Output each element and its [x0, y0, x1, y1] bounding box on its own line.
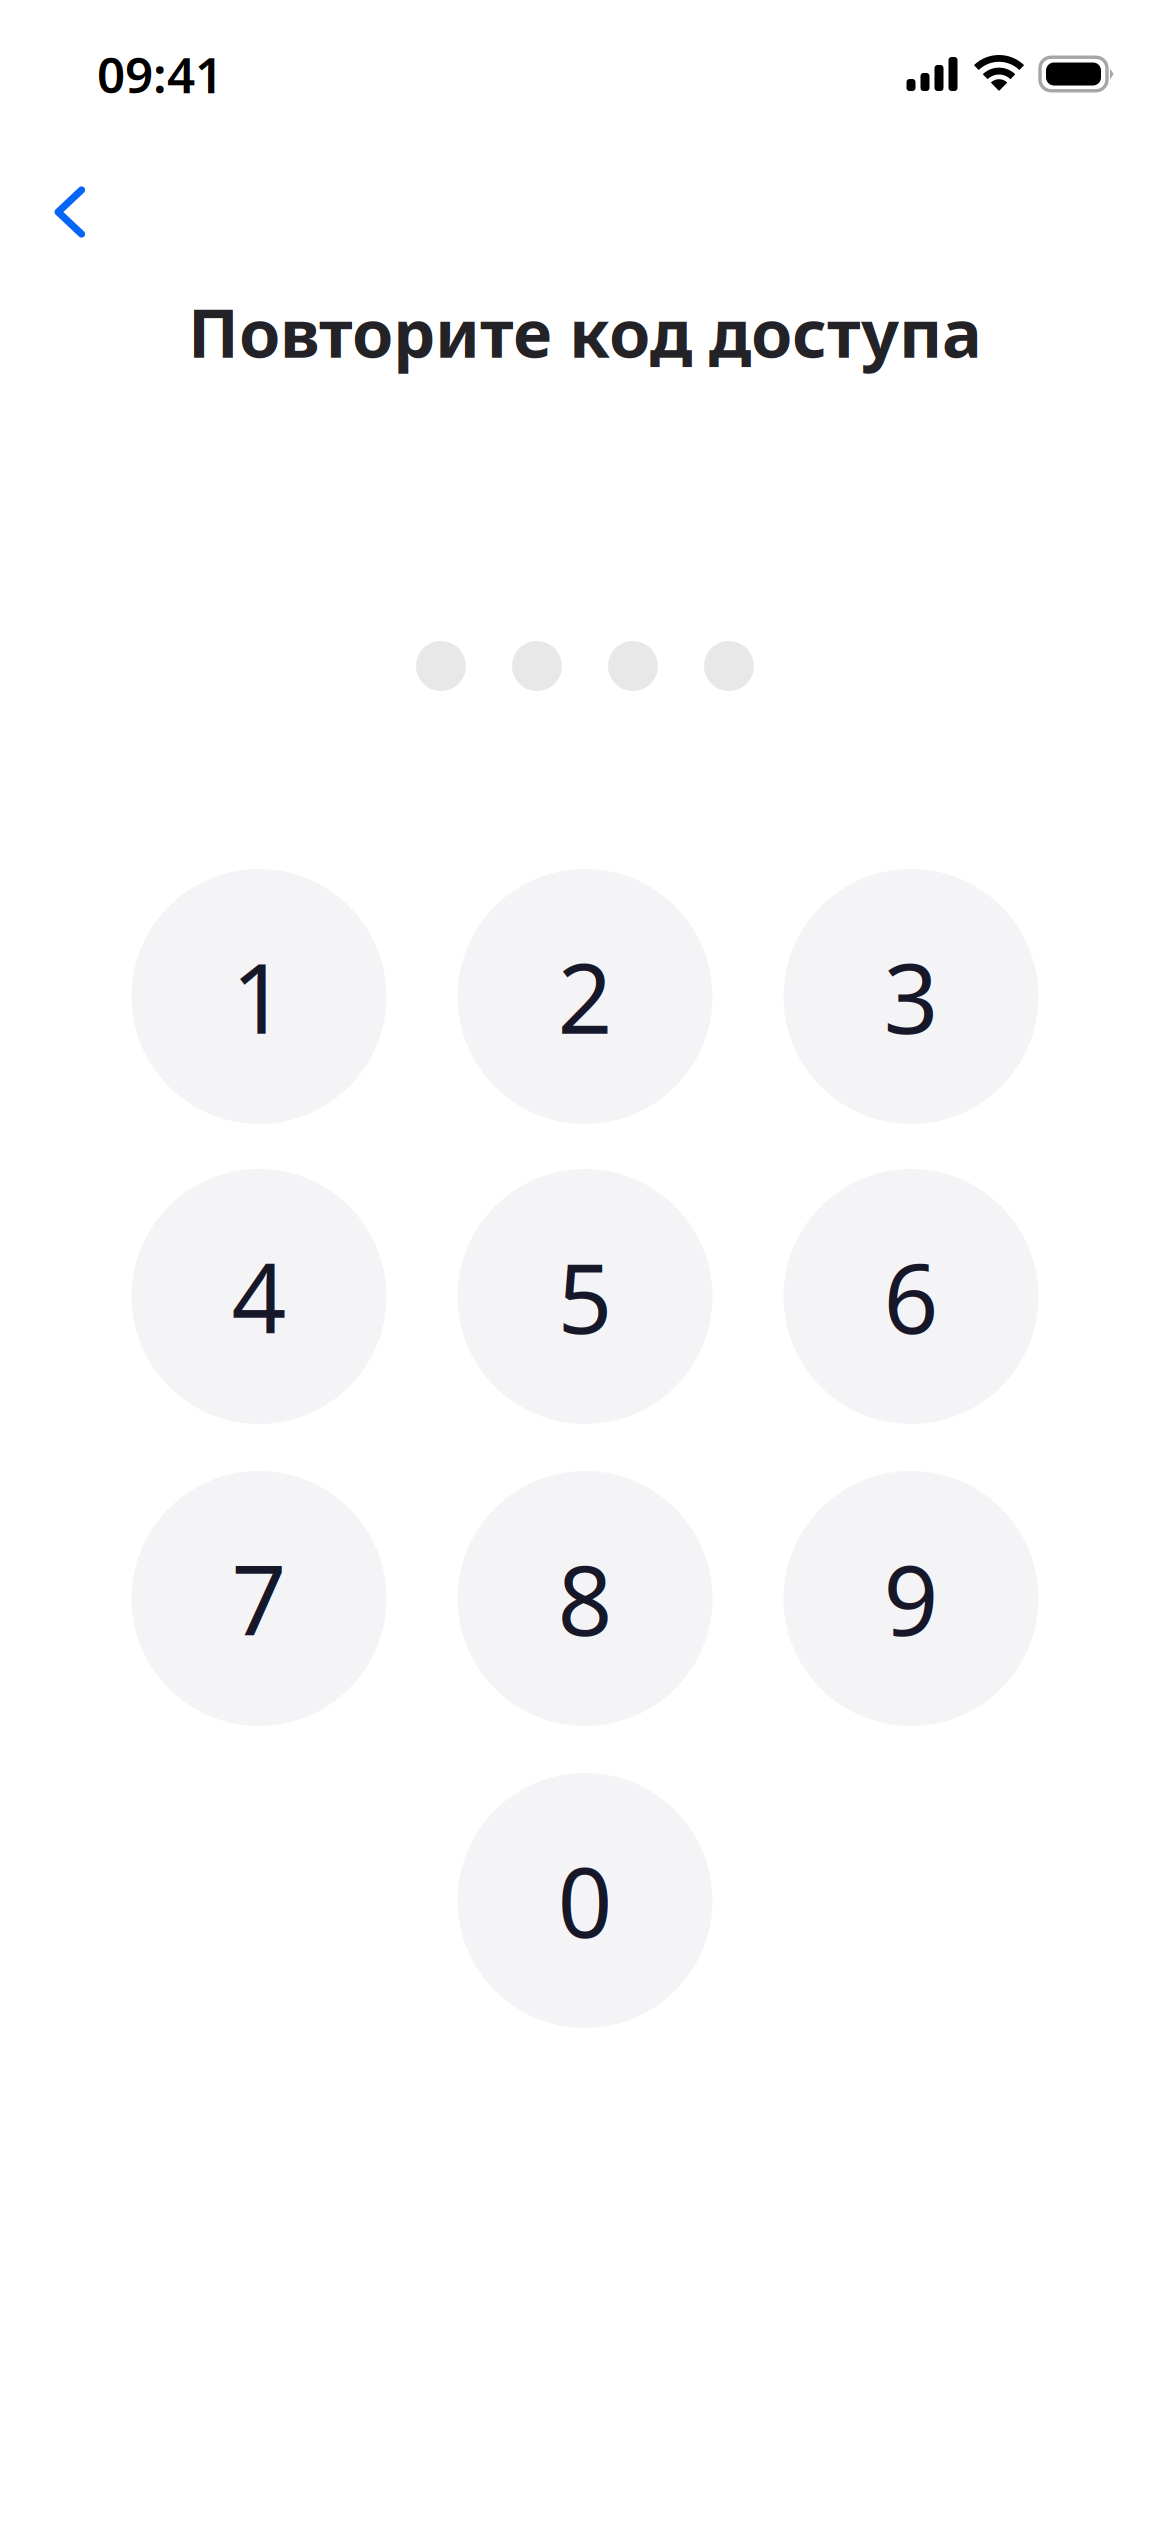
- button[interactable]: 6: [783, 1169, 1038, 1424]
- button[interactable]: 5: [457, 1169, 712, 1424]
- staticText: 6: [883, 1233, 938, 1360]
- button[interactable]: Back: [15, 157, 125, 267]
- staticText: 9: [883, 1535, 938, 1662]
- button[interactable]: 2: [457, 869, 712, 1124]
- button[interactable]: 7: [131, 1471, 386, 1726]
- staticText: 2: [557, 933, 612, 1060]
- staticText: 8: [557, 1535, 612, 1662]
- staticText: 0: [557, 1837, 612, 1964]
- staticText: 7: [231, 1535, 286, 1662]
- button[interactable]: 4: [131, 1169, 386, 1424]
- button[interactable]: 8: [457, 1471, 712, 1726]
- staticText: 3: [883, 933, 938, 1060]
- staticText: 09:41: [97, 41, 223, 107]
- staticText: 1: [231, 933, 286, 1060]
- button[interactable]: 3: [783, 869, 1038, 1124]
- button[interactable]: 1: [131, 869, 386, 1124]
- staticText: Повторите код доступа: [188, 288, 982, 376]
- staticText: 5: [557, 1233, 612, 1360]
- staticText: 4: [231, 1233, 286, 1360]
- button[interactable]: 0: [457, 1773, 712, 2028]
- button[interactable]: 9: [783, 1471, 1038, 1726]
